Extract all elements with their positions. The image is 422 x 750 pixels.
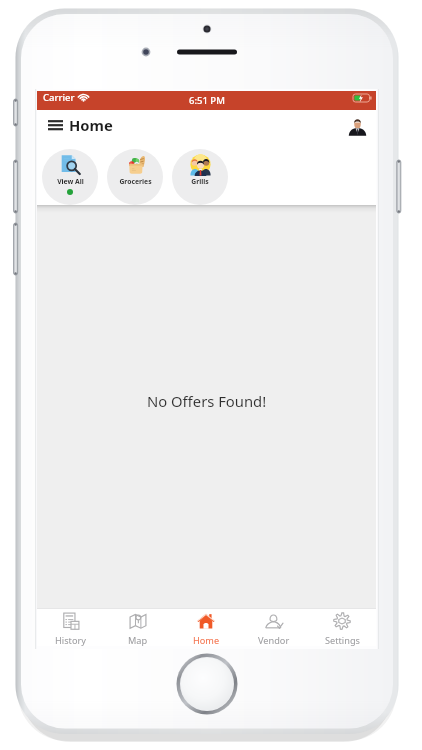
- staticText: View All: [57, 177, 84, 186]
- staticText: 6:51 PM: [189, 94, 225, 107]
- button[interactable]: View All: [42, 149, 98, 205]
- button[interactable]: Profile: [344, 113, 370, 139]
- button[interactable]: Grills: [172, 149, 228, 205]
- button[interactable]: Vendor: [240, 609, 308, 646]
- staticText: Vendor: [258, 634, 290, 646]
- staticText: No Offers Found!: [147, 391, 267, 411]
- button[interactable]: Groceries: [107, 149, 163, 205]
- button[interactable]: Home: [172, 609, 240, 646]
- staticText: Map: [128, 634, 148, 646]
- staticText: Home: [69, 115, 113, 135]
- staticText: History: [55, 634, 86, 646]
- button[interactable]: History: [37, 609, 104, 646]
- staticText: Grills: [191, 177, 209, 186]
- staticText: Carrier: [43, 91, 75, 104]
- staticText: Home: [193, 634, 220, 646]
- button[interactable]: Menu: [44, 114, 66, 136]
- button[interactable]: Map: [104, 609, 172, 646]
- button[interactable]: Settings: [308, 609, 376, 646]
- staticText: Settings: [325, 634, 360, 646]
- staticText: Groceries: [119, 177, 152, 186]
